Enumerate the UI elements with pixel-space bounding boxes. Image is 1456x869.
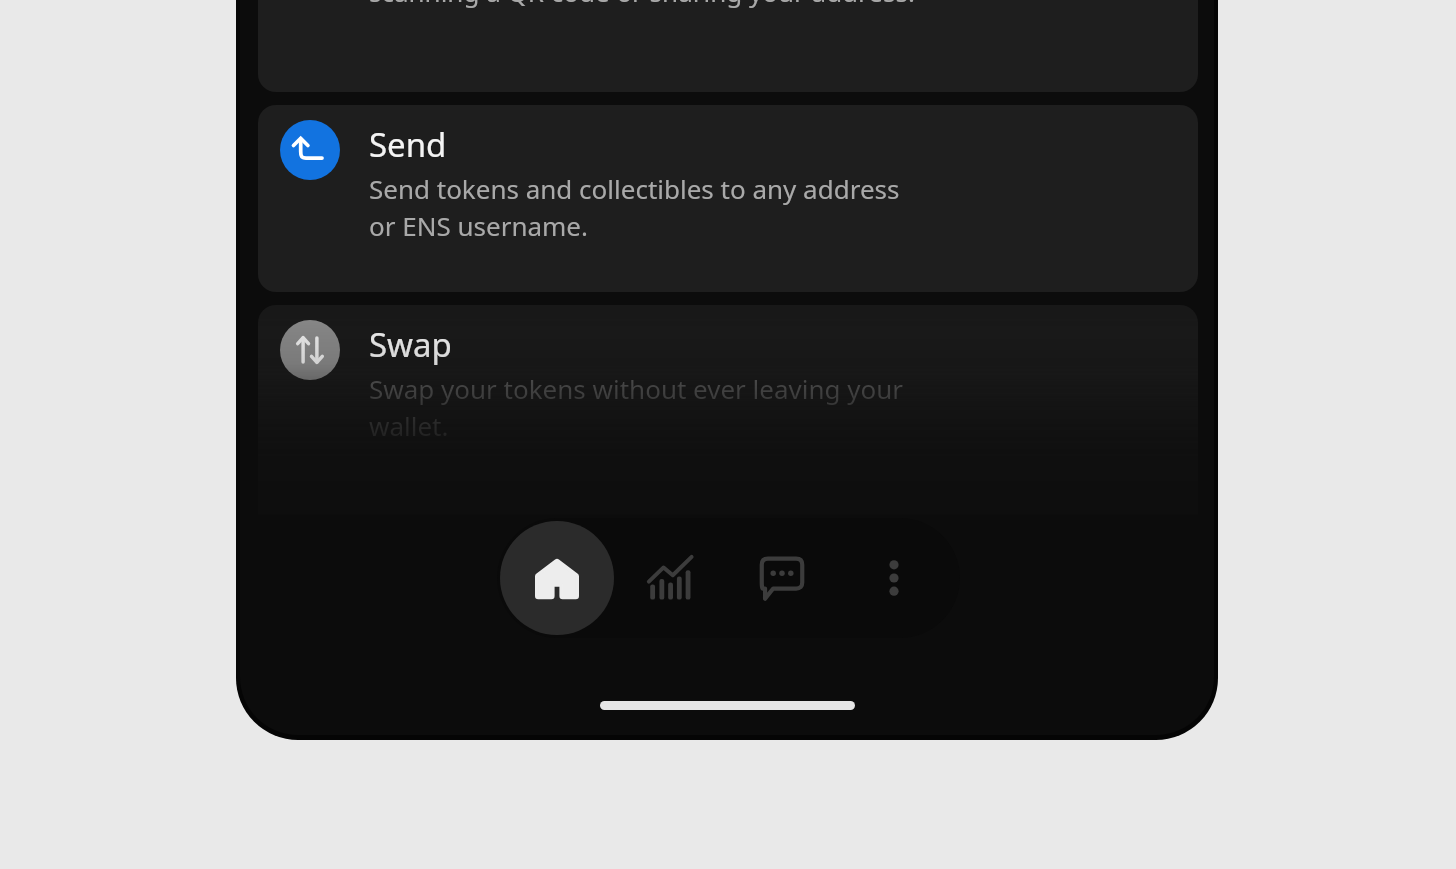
button[interactable]: Home	[500, 521, 614, 635]
button[interactable]: More options	[838, 521, 950, 635]
staticText: Swap your tokens without ever leaving yo…	[369, 371, 904, 444]
staticText: Send	[369, 122, 447, 167]
button[interactable]: Messages	[726, 521, 838, 635]
button[interactable]: Markets	[614, 521, 726, 635]
staticText: Swap	[369, 322, 452, 367]
button[interactable]: Receive crypto from another wallet by sc…	[258, 0, 1198, 92]
button[interactable]	[258, 305, 1198, 515]
button[interactable]: Send	[258, 105, 1198, 292]
staticText: Send tokens and collectibles to any addr…	[369, 171, 900, 244]
staticText: Receive crypto from another wallet by sc…	[369, 0, 915, 10]
